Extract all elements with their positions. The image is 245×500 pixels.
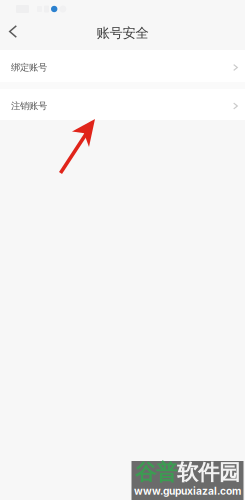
staticText: 绑定账号 bbox=[11, 62, 47, 73]
staticText: www.gupuxiazal.com bbox=[134, 485, 241, 497]
staticText: 账号安全 bbox=[96, 25, 148, 41]
button[interactable]: 注销账号 bbox=[0, 89, 245, 120]
staticText: 谷普 bbox=[135, 459, 177, 486]
button[interactable]: Back bbox=[0, 18, 26, 48]
button[interactable]: 绑定账号 bbox=[0, 50, 245, 82]
staticText: 注销账号 bbox=[11, 100, 47, 112]
staticText: 软件园 bbox=[177, 459, 240, 486]
